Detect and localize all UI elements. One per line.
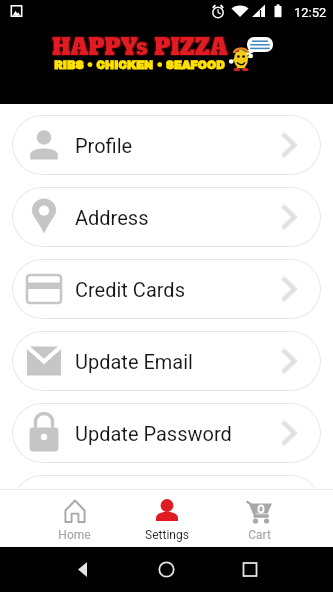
button[interactable]: Settings (121, 493, 213, 547)
staticText: Update Email (75, 350, 193, 373)
staticText: Settings (145, 528, 189, 542)
button[interactable]: Profile (12, 115, 321, 175)
staticText: HAPPYs PIZZA (53, 33, 229, 63)
staticText: HAPPYs PIZZA (53, 32, 229, 62)
staticText: RIBS • CHICKEN • SEAFOOD (54, 59, 225, 71)
staticText: HAPPYs PIZZA (52, 33, 228, 63)
staticText: Address (75, 206, 149, 229)
button[interactable]: Update Email (12, 331, 321, 391)
button[interactable]: Cart (213, 493, 305, 547)
staticText: HAPPYs PIZZA (52, 31, 228, 61)
staticText: HAPPYs PIZZA (53, 31, 229, 61)
staticText: 12:52 (294, 5, 327, 20)
button[interactable]: Credit Cards (12, 259, 321, 319)
staticText: HAPPYs PIZZA (51, 33, 227, 63)
button[interactable]: Update Password (12, 403, 321, 463)
button[interactable]: Address (12, 187, 321, 247)
staticText: HAPPYs PIZZA (51, 32, 227, 62)
other: System navigation (0, 547, 333, 592)
button[interactable]: Home (28, 493, 121, 547)
staticText: Credit Cards (75, 278, 185, 301)
staticText: HAPPYs PIZZA (51, 31, 227, 61)
staticText: Cart (248, 528, 271, 542)
staticText: Update Password (75, 422, 232, 445)
button[interactable]: Logout (12, 475, 321, 489)
staticText: Home (58, 528, 91, 542)
staticText: HAPPYs PIZZA (52, 32, 228, 62)
staticText: Profile (75, 134, 133, 157)
